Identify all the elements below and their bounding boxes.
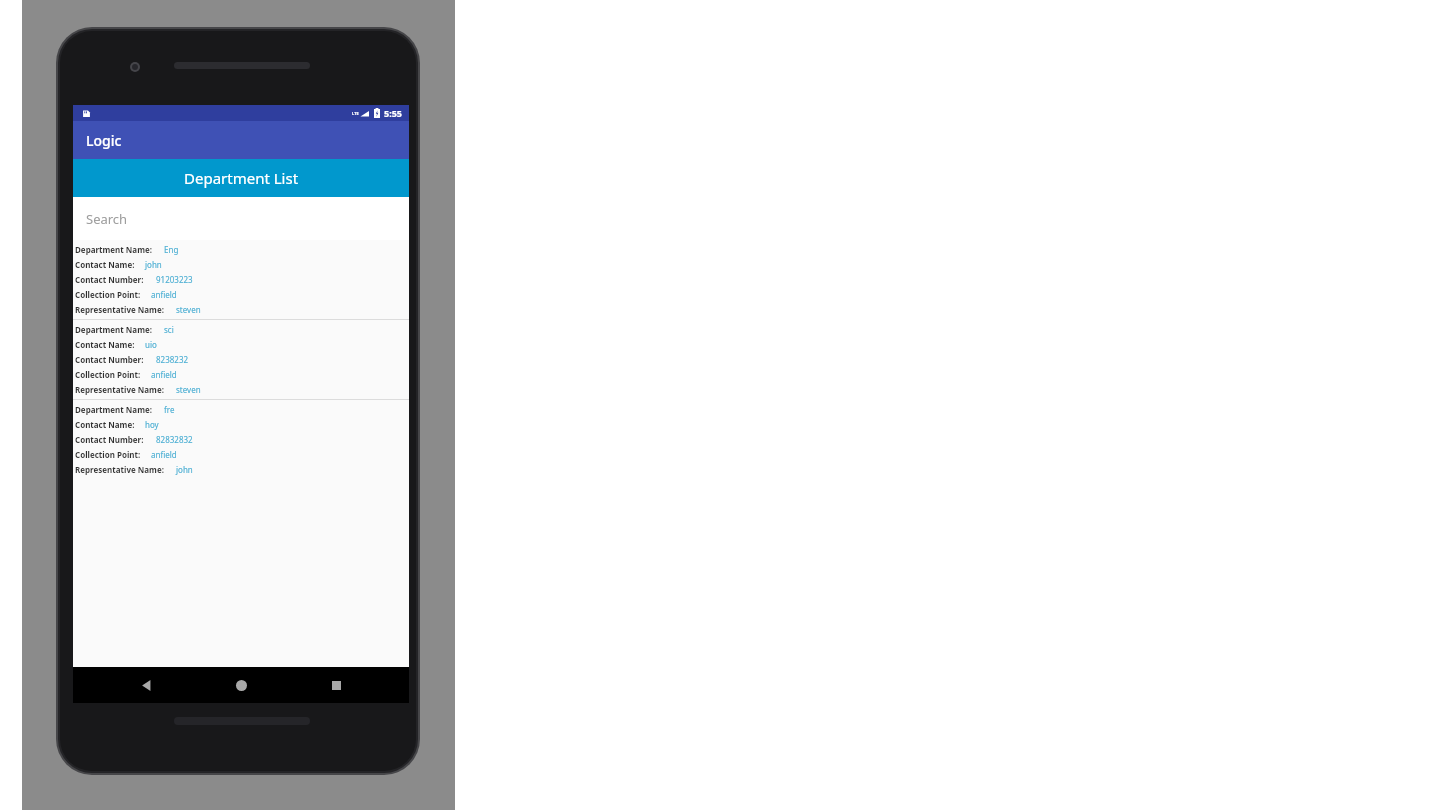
staticText: Collection Point: — [75, 449, 141, 460]
staticText: Representative Name: — [75, 464, 164, 475]
staticText: steven — [176, 384, 201, 395]
staticText: steven — [176, 304, 201, 315]
staticText: fre — [164, 404, 175, 415]
button[interactable]: Department Name: — [73, 400, 409, 479]
staticText: Department Name: — [75, 324, 152, 335]
button[interactable]: Home — [219, 667, 263, 703]
staticText: Representative Name: — [75, 304, 164, 315]
staticText: anfield — [151, 289, 177, 300]
staticText: Department Name: — [75, 404, 152, 415]
staticText: Eng — [164, 244, 179, 255]
staticText: anfield — [151, 369, 177, 380]
staticText: anfield — [151, 449, 177, 460]
staticText: john — [145, 259, 162, 270]
staticText: Contact Number: — [75, 354, 144, 365]
button[interactable]: Department Name: — [73, 240, 409, 319]
button[interactable]: Recent apps — [314, 667, 358, 703]
staticText: 5:55 — [384, 107, 402, 119]
staticText: hoy — [145, 419, 159, 430]
staticText: john — [176, 464, 193, 475]
button[interactable]: Department Name: — [73, 320, 409, 399]
staticText: Search — [86, 210, 128, 228]
button[interactable]: Back — [124, 667, 168, 703]
staticText: Representative Name: — [75, 384, 164, 395]
staticText: Collection Point: — [75, 289, 141, 300]
staticText: Contact Name: — [75, 339, 135, 350]
staticText: Logic — [86, 131, 122, 150]
staticText: Contact Name: — [75, 419, 135, 430]
staticText: Contact Number: — [75, 434, 144, 445]
button[interactable]: Search — [73, 197, 409, 240]
button[interactable]: Logic — [73, 121, 409, 159]
staticText: sci — [164, 324, 174, 335]
staticText: Contact Number: — [75, 274, 144, 285]
staticText: 91203223 — [156, 274, 193, 285]
staticText: Department List — [184, 168, 299, 188]
staticText: Collection Point: — [75, 369, 141, 380]
staticText: uio — [145, 339, 157, 350]
staticText: 82832832 — [156, 434, 193, 445]
staticText: Contact Name: — [75, 259, 135, 270]
staticText: LTE — [352, 111, 359, 116]
staticText: 8238232 — [156, 354, 189, 365]
staticText: Department Name: — [75, 244, 152, 255]
